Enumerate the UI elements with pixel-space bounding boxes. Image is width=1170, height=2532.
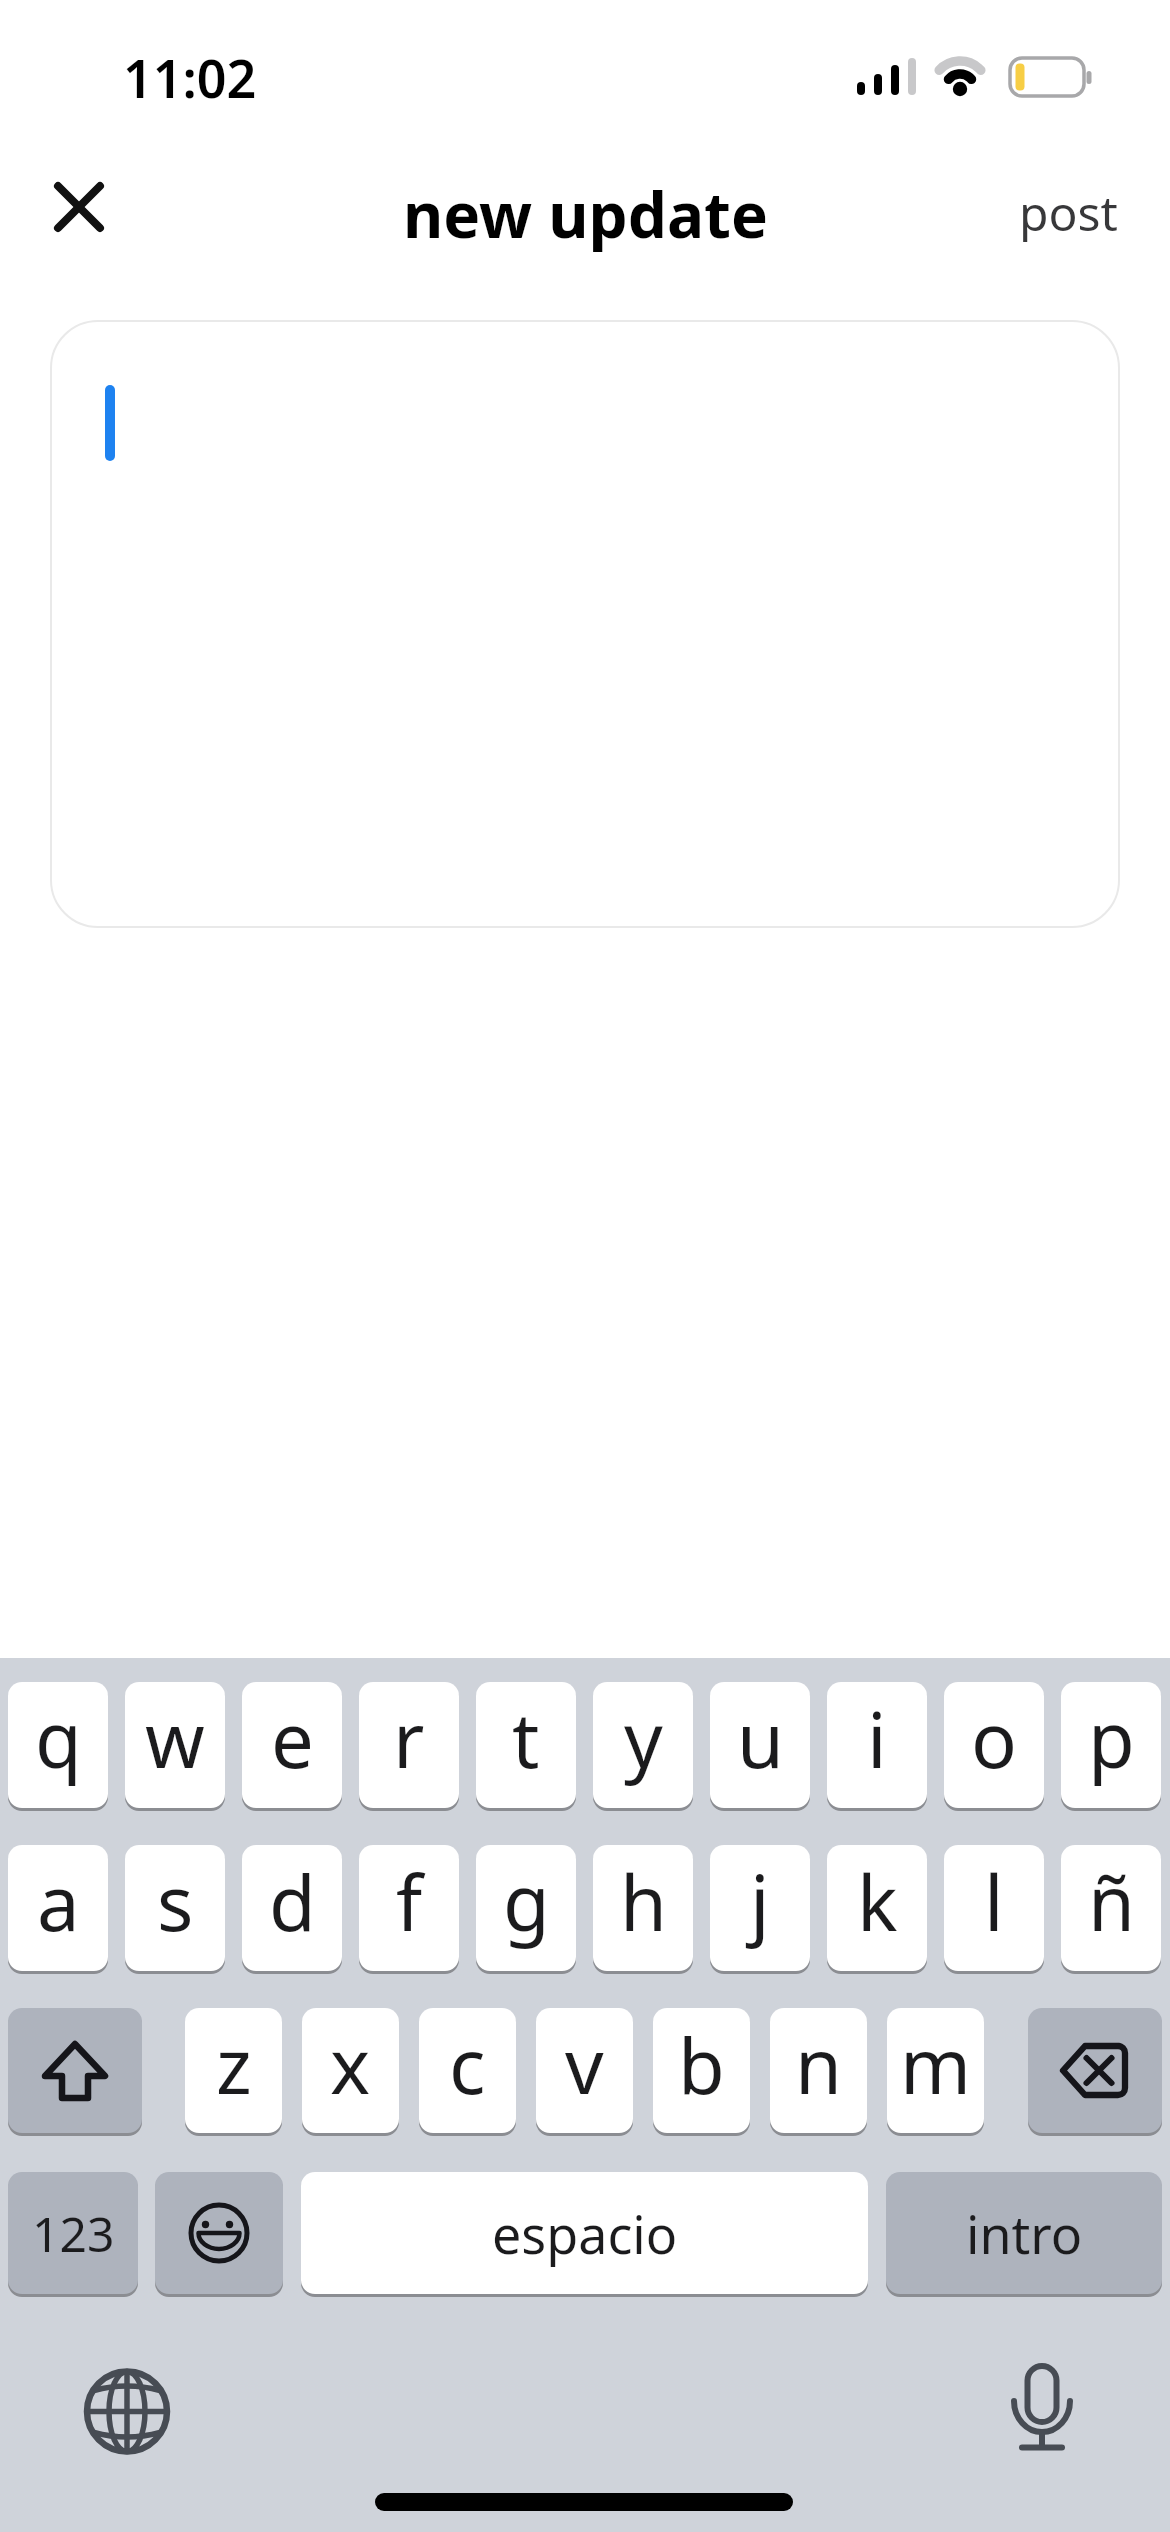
staticText: intro bbox=[966, 2198, 1083, 2269]
staticText: g bbox=[503, 1850, 550, 1954]
button[interactable]: ñ bbox=[1061, 1845, 1161, 1971]
button[interactable]: s bbox=[125, 1845, 225, 1971]
staticText: new update bbox=[403, 172, 768, 252]
staticText: ñ bbox=[1088, 1850, 1135, 1954]
button[interactable] bbox=[39, 167, 119, 247]
button[interactable]: t bbox=[476, 1682, 576, 1808]
button[interactable]: e bbox=[242, 1682, 342, 1808]
staticText: d bbox=[269, 1850, 316, 1954]
button[interactable]: y bbox=[593, 1682, 693, 1808]
button[interactable]: b bbox=[653, 2008, 750, 2133]
button[interactable]: w bbox=[125, 1682, 225, 1808]
button[interactable]: 123 bbox=[8, 2172, 138, 2294]
staticText: m bbox=[900, 2013, 972, 2117]
staticText: c bbox=[449, 2013, 486, 2117]
staticText: y bbox=[624, 1687, 663, 1791]
button[interactable]: j bbox=[710, 1845, 810, 1971]
button[interactable]: z bbox=[185, 2008, 282, 2133]
button[interactable]: espacio bbox=[301, 2172, 868, 2294]
staticText: l bbox=[984, 1850, 1004, 1954]
button[interactable] bbox=[155, 2172, 283, 2294]
staticText: 123 bbox=[32, 2201, 115, 2266]
button[interactable]: p bbox=[1061, 1682, 1161, 1808]
button[interactable]: r bbox=[359, 1682, 459, 1808]
staticText: h bbox=[620, 1850, 667, 1954]
button[interactable]: k bbox=[827, 1845, 927, 1971]
button[interactable]: intro bbox=[886, 2172, 1162, 2294]
button[interactable]: o bbox=[944, 1682, 1044, 1808]
staticText: z bbox=[216, 2013, 252, 2117]
staticText: i bbox=[867, 1687, 887, 1791]
staticText: k bbox=[857, 1850, 898, 1954]
staticText: p bbox=[1088, 1687, 1135, 1791]
button[interactable]: q bbox=[8, 1682, 108, 1808]
staticText: r bbox=[393, 1687, 425, 1791]
staticText: e bbox=[271, 1687, 314, 1791]
staticText: t bbox=[512, 1687, 540, 1791]
staticText: q bbox=[35, 1687, 82, 1791]
button[interactable]: f bbox=[359, 1845, 459, 1971]
staticText: x bbox=[330, 2013, 371, 2117]
button[interactable]: i bbox=[827, 1682, 927, 1808]
staticText: b bbox=[678, 2013, 725, 2117]
button[interactable]: a bbox=[8, 1845, 108, 1971]
staticText: o bbox=[971, 1687, 1017, 1791]
staticText: j bbox=[750, 1850, 770, 1954]
button[interactable]: l bbox=[944, 1845, 1044, 1971]
button[interactable]: d bbox=[242, 1845, 342, 1971]
staticText: espacio bbox=[492, 2198, 678, 2269]
button[interactable]: m bbox=[887, 2008, 984, 2133]
button[interactable]: x bbox=[302, 2008, 399, 2133]
button[interactable]: h bbox=[593, 1845, 693, 1971]
button[interactable] bbox=[8, 2008, 142, 2133]
button[interactable]: post bbox=[998, 172, 1138, 252]
button[interactable]: c bbox=[419, 2008, 516, 2133]
staticText: n bbox=[795, 2013, 842, 2117]
staticText: w bbox=[145, 1687, 205, 1791]
staticText: s bbox=[157, 1850, 194, 1954]
staticText: u bbox=[737, 1687, 784, 1791]
button[interactable]: n bbox=[770, 2008, 867, 2133]
button[interactable]: g bbox=[476, 1845, 576, 1971]
staticText: 11:02 bbox=[123, 42, 257, 106]
button[interactable]: v bbox=[536, 2008, 633, 2133]
staticText: a bbox=[37, 1850, 80, 1954]
button[interactable]: u bbox=[710, 1682, 810, 1808]
staticText: post bbox=[1019, 180, 1118, 245]
button[interactable] bbox=[1028, 2008, 1162, 2133]
staticText: v bbox=[565, 2013, 604, 2117]
staticText: f bbox=[396, 1850, 423, 1954]
button[interactable] bbox=[50, 320, 1120, 928]
